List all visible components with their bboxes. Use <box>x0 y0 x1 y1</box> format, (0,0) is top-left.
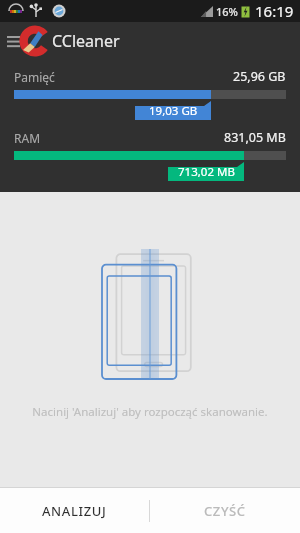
staticText: Nacinij 'Analizuj' aby rozpocząć skanowa… <box>0 404 300 420</box>
button[interactable]: Open navigation menu <box>2 22 24 60</box>
staticText: RAM <box>14 130 41 146</box>
staticText: CCleaner <box>52 30 120 52</box>
staticText: 19,03 GB <box>149 103 198 119</box>
staticText: 713,02 MB <box>178 164 235 180</box>
staticText: 25,96 GB <box>233 68 286 85</box>
staticText: Pamięć <box>14 69 55 85</box>
staticText: ANALIZUJ <box>42 502 107 520</box>
button[interactable]: CZYŚĆ <box>150 488 300 533</box>
button[interactable]: ANALIZUJ <box>0 488 149 533</box>
staticText: 831,05 MB <box>224 129 286 146</box>
staticText: CZYŚĆ <box>204 502 246 520</box>
staticText: 16% <box>216 4 238 19</box>
staticText: 16:19 <box>255 1 294 21</box>
